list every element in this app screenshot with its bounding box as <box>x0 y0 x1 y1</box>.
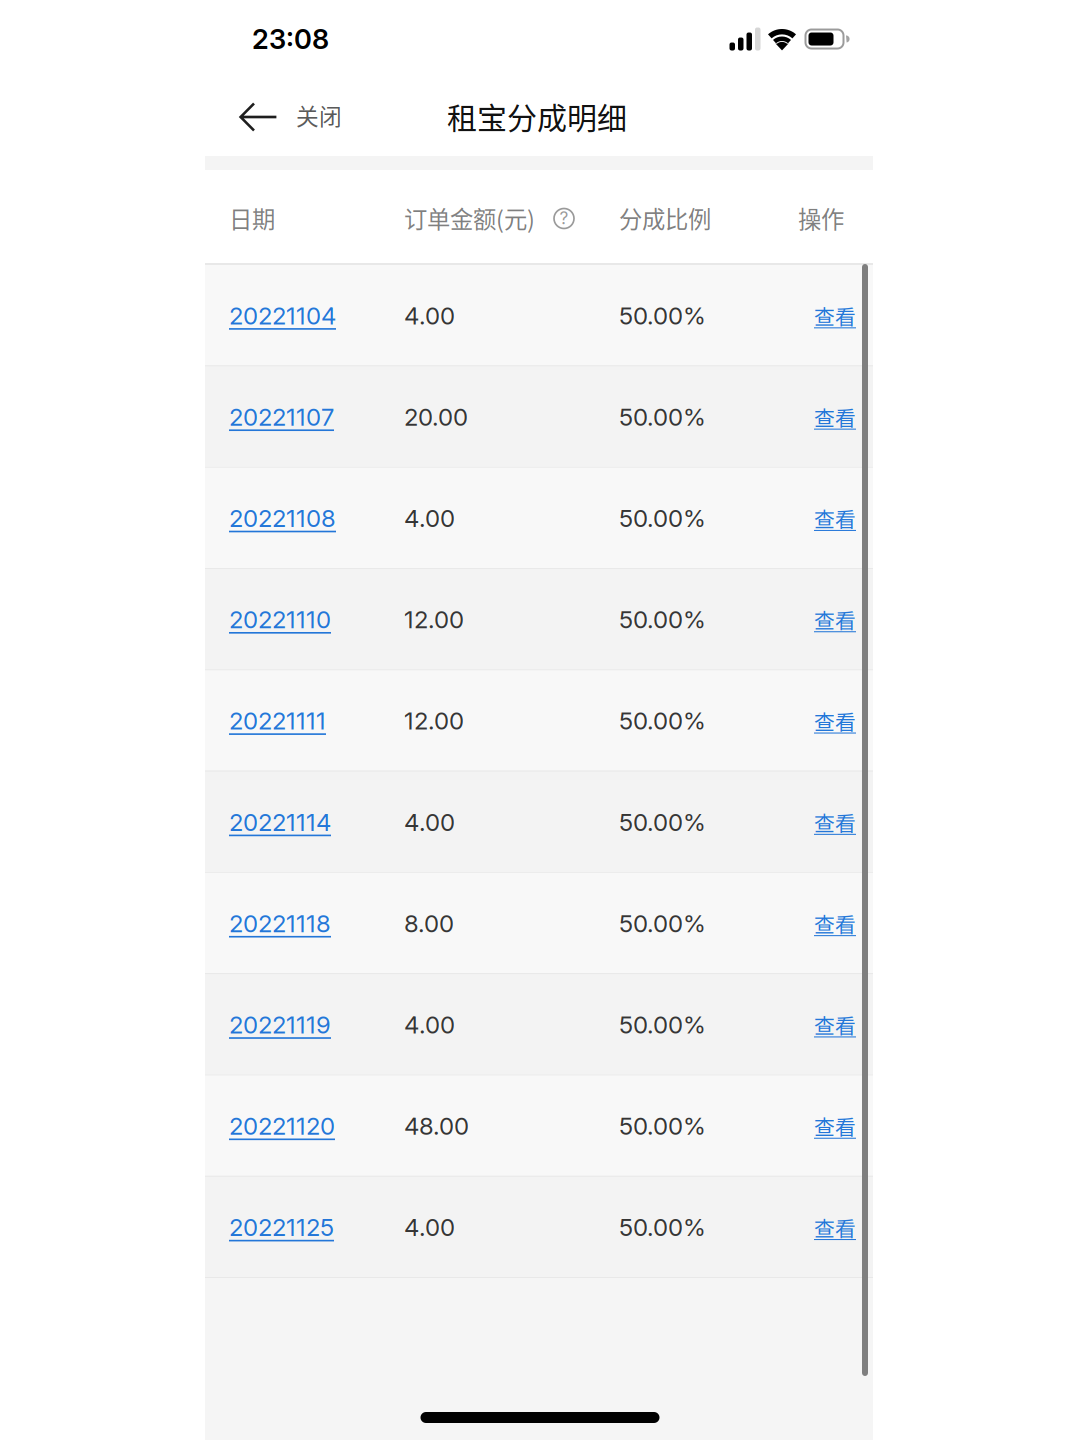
button[interactable]: 20221110 <box>229 605 331 634</box>
button[interactable]: 查看 <box>814 1111 856 1141</box>
staticText: 50.00% <box>619 1010 706 1039</box>
staticText: 查看 <box>814 604 856 635</box>
button[interactable]: 20221104 <box>229 301 336 330</box>
staticText: 50.00% <box>619 301 706 330</box>
staticText: 50.00% <box>619 909 706 938</box>
button[interactable]: 20221107 <box>229 402 334 431</box>
staticText: 20221125 <box>229 1213 334 1242</box>
button[interactable]: 订单金额说明 <box>554 208 574 228</box>
staticText: 查看 <box>814 402 856 432</box>
staticText: 20221118 <box>229 909 331 938</box>
staticText: 20221119 <box>229 1010 331 1039</box>
button[interactable]: 20221119 <box>229 1010 331 1039</box>
button[interactable]: 查看 <box>814 1010 856 1040</box>
staticText: 50.00% <box>619 504 706 533</box>
staticText: 查看 <box>814 1010 856 1040</box>
staticText: 50.00% <box>619 402 706 431</box>
staticText: 50.00% <box>619 808 706 837</box>
staticText: 查看 <box>814 908 856 938</box>
staticText: 日期 <box>229 201 275 235</box>
button[interactable]: 查看 <box>814 301 856 331</box>
button[interactable]: 20221118 <box>229 909 331 938</box>
button[interactable]: 查看 <box>814 402 856 432</box>
staticText: 20221120 <box>229 1111 335 1140</box>
button[interactable]: 查看 <box>814 908 856 938</box>
staticText: 查看 <box>814 1111 856 1141</box>
button[interactable]: 20221108 <box>229 504 336 533</box>
staticText: 订单金额(元) <box>404 201 535 235</box>
staticText: 8.00 <box>404 909 454 938</box>
staticText: 分成比例 <box>619 201 711 235</box>
staticText: 48.00 <box>404 1111 469 1140</box>
button[interactable]: 查看 <box>814 503 856 533</box>
staticText: 查看 <box>814 1212 856 1242</box>
staticText: 23:08 <box>252 22 329 56</box>
staticText: 查看 <box>814 503 856 533</box>
staticText: 20.00 <box>404 402 468 431</box>
staticText: 20221107 <box>229 402 334 431</box>
staticText: 20221104 <box>229 301 336 330</box>
staticText: 关闭 <box>296 99 342 131</box>
button[interactable]: 查看 <box>814 706 856 736</box>
button[interactable]: 20221120 <box>229 1111 335 1140</box>
button[interactable]: 20221111 <box>229 706 326 735</box>
staticText: 4.00 <box>404 504 455 533</box>
staticText: 20221111 <box>229 706 326 735</box>
staticText: 查看 <box>814 706 856 736</box>
staticText: 4.00 <box>404 1213 455 1242</box>
staticText: 12.00 <box>404 706 464 735</box>
staticText: 4.00 <box>404 301 455 330</box>
staticText: 4.00 <box>404 1010 455 1039</box>
staticText: 操作 <box>798 201 844 235</box>
staticText: 20221108 <box>229 504 336 533</box>
button[interactable]: 20221114 <box>229 808 331 837</box>
staticText: 50.00% <box>619 1213 706 1242</box>
staticText: 查看 <box>814 301 856 331</box>
button[interactable]: 查看 <box>814 807 856 837</box>
button[interactable]: 查看 <box>814 604 856 635</box>
staticText: 租宝分成明细 <box>447 94 627 138</box>
staticText: 50.00% <box>619 605 706 634</box>
button[interactable]: 20221125 <box>229 1213 334 1242</box>
staticText: 20221110 <box>229 605 331 634</box>
staticText: 50.00% <box>619 706 706 735</box>
staticText: 12.00 <box>404 605 464 634</box>
button[interactable]: 关闭 <box>0 78 366 156</box>
staticText: 50.00% <box>619 1111 706 1140</box>
staticText: ? <box>559 207 568 228</box>
staticText: 查看 <box>814 807 856 837</box>
staticText: 4.00 <box>404 808 455 837</box>
staticText: 20221114 <box>229 808 331 837</box>
button[interactable]: 查看 <box>814 1212 856 1242</box>
